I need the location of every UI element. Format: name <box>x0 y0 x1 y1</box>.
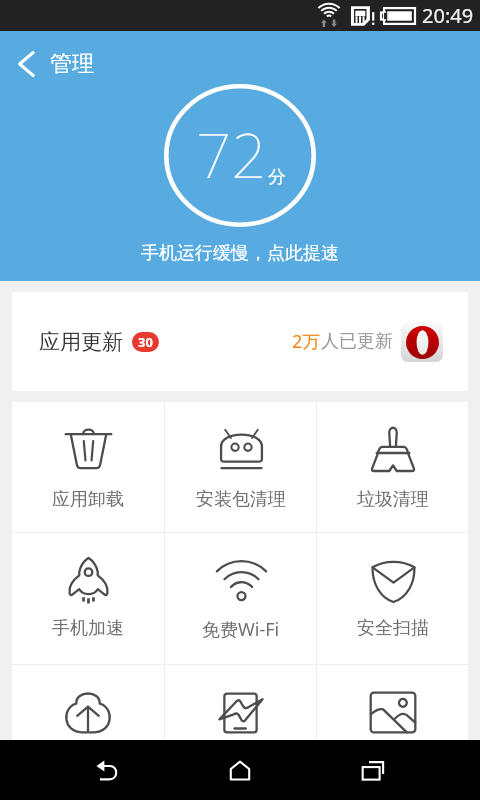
staticText: 20:49 <box>422 2 474 29</box>
staticText: 分 <box>268 166 286 189</box>
button[interactable]: 安全扫描 <box>317 533 468 664</box>
button[interactable]: Recent apps <box>335 745 411 795</box>
staticText: 垃圾清理 <box>357 488 429 511</box>
button[interactable]: tool <box>165 665 316 740</box>
button[interactable]: Home <box>202 745 278 795</box>
staticText: 安全扫描 <box>357 617 429 640</box>
button[interactable]: Back <box>69 745 145 795</box>
staticText: 72 <box>196 112 267 196</box>
button[interactable]: tool <box>317 665 468 740</box>
staticText: 应用更新 <box>39 329 123 355</box>
button[interactable]: 手机运行缓慢，点此提速 <box>141 242 339 265</box>
staticText: 应用卸载 <box>52 488 124 511</box>
button[interactable]: 应用更新 <box>12 292 468 391</box>
staticText: 管理 <box>50 50 94 78</box>
staticText: 手机加速 <box>52 617 124 640</box>
staticText: 2万 <box>292 329 321 354</box>
button[interactable]: Back <box>6 44 46 84</box>
staticText: 人已更新 <box>321 330 393 353</box>
button[interactable]: 免费Wi-Fi <box>165 533 316 664</box>
button[interactable]: 应用卸载 <box>12 402 164 532</box>
button[interactable]: 手机加速 <box>12 533 164 664</box>
button[interactable]: 72 <box>164 84 316 227</box>
button[interactable]: 垃圾清理 <box>317 402 468 532</box>
staticText: 30 <box>138 333 153 351</box>
staticText: 免费Wi-Fi <box>202 617 280 642</box>
button[interactable]: 安装包清理 <box>165 402 316 532</box>
staticText: 安装包清理 <box>196 488 286 511</box>
button[interactable]: tool <box>12 665 164 740</box>
